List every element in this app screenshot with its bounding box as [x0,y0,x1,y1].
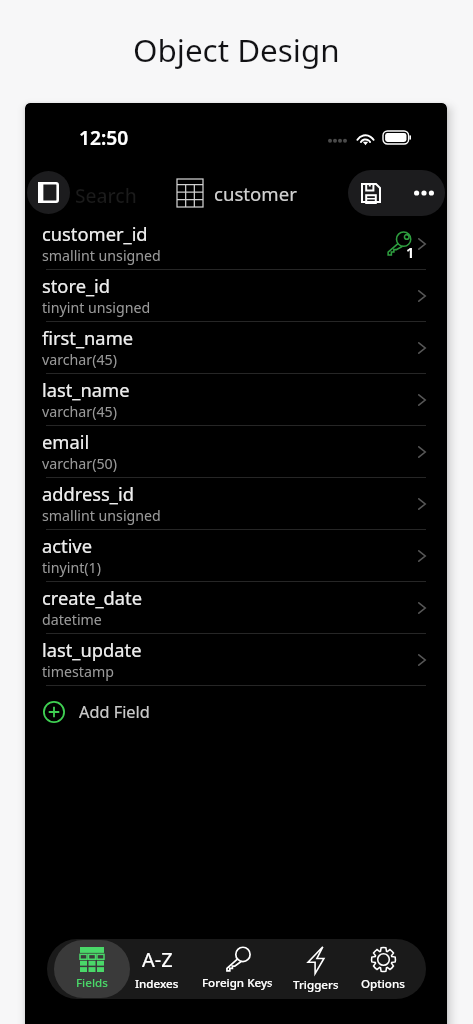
button[interactable]: Foreign Keys [197,940,277,998]
staticText: last_update [42,637,142,662]
staticText: datetime [42,610,102,629]
staticText: Search [75,182,137,208]
staticText: tinyint(1) [42,558,101,577]
staticText: A-Z [142,946,173,973]
button[interactable]: last_update [25,634,447,686]
button[interactable]: customer_id [25,218,447,270]
staticText: smallint unsigned [42,246,161,265]
staticText: store_id [42,273,111,298]
button[interactable]: Add Field [25,686,447,738]
staticText: smallint unsigned [42,506,161,525]
button[interactable]: last_name [25,374,447,426]
button[interactable]: Save [351,173,391,213]
button[interactable]: Options [354,940,412,998]
staticText: Object Design [133,28,340,71]
staticText: 12:50 [79,124,129,150]
staticText: create_date [42,585,143,610]
staticText: customer [214,181,297,206]
button[interactable]: address_id [25,478,447,530]
staticText: timestamp [42,662,114,681]
staticText: Triggers [293,977,339,993]
button[interactable]: email [25,426,447,478]
button[interactable]: customer [177,179,297,207]
staticText: address_id [42,481,134,506]
button[interactable]: More options [404,173,444,213]
button[interactable]: Triggers [287,940,345,998]
staticText: email [42,429,90,454]
staticText: Indexes [135,976,179,992]
staticText: varchar(45) [42,350,117,369]
staticText: tinyint unsigned [42,298,151,317]
staticText: Options [361,976,405,992]
staticText: varchar(45) [42,402,117,421]
staticText: 1 [406,242,415,262]
staticText: active [42,533,92,558]
staticText: varchar(50) [42,454,117,473]
staticText: Fields [76,975,108,991]
button[interactable]: create_date [25,582,447,634]
staticText: last_name [42,377,130,402]
button[interactable]: first_name [25,322,447,374]
staticText: first_name [42,325,134,350]
staticText: Add Field [79,701,150,723]
button[interactable]: active [25,530,447,582]
staticText: customer_id [42,221,148,246]
button[interactable]: Fields [54,940,130,998]
staticText: Foreign Keys [202,975,273,991]
button[interactable]: A-Z [128,940,186,998]
button[interactable]: Sidebar [27,171,70,214]
button[interactable]: store_id [25,270,447,322]
